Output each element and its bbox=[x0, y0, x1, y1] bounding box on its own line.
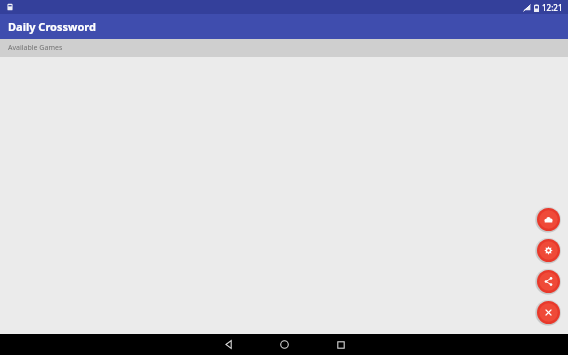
button[interactable]: Home bbox=[268, 334, 300, 355]
button[interactable]: Close bbox=[535, 299, 561, 325]
button[interactable]: Recent apps bbox=[325, 334, 357, 355]
staticText: 12:21 bbox=[542, 2, 563, 13]
staticText: Available Games bbox=[8, 43, 63, 53]
staticText: Daily Crossword bbox=[8, 19, 96, 34]
button[interactable]: Share bbox=[535, 268, 561, 294]
button[interactable]: Settings bbox=[535, 237, 561, 263]
button[interactable]: Back bbox=[212, 334, 244, 355]
button[interactable]: Backup to cloud bbox=[535, 206, 561, 232]
